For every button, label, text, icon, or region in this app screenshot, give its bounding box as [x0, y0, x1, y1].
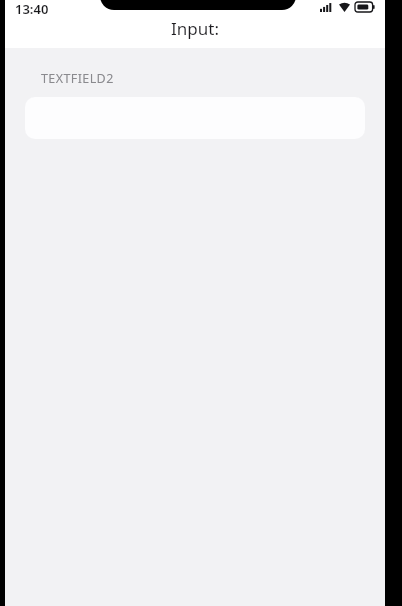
staticText: 13:40 — [15, 0, 49, 14]
staticText: TEXTFIELD2 — [41, 70, 114, 87]
other: Wi-Fi — [339, 3, 350, 12]
staticText: Input: — [171, 17, 219, 40]
other: Cellular signal — [320, 3, 335, 12]
other: Battery — [355, 2, 375, 12]
